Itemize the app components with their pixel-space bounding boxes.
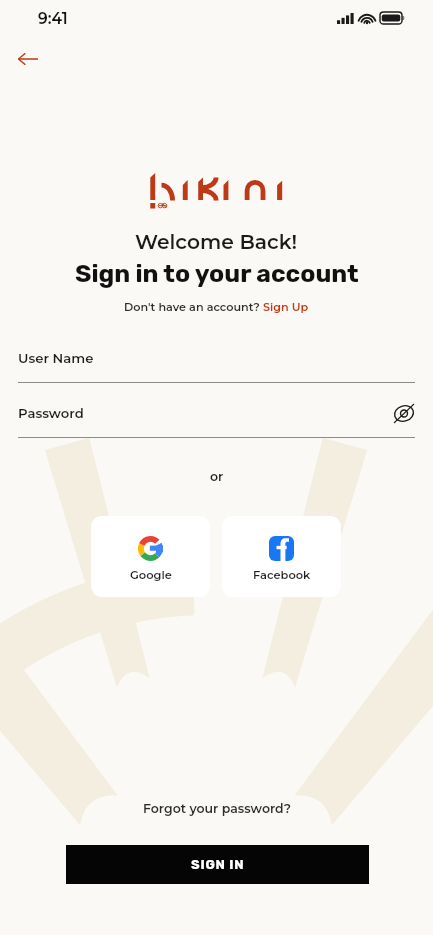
button[interactable]: Back bbox=[12, 43, 44, 75]
button[interactable]: Google bbox=[91, 516, 210, 597]
staticText: or bbox=[210, 469, 224, 484]
staticText: SIGN IN bbox=[191, 857, 245, 872]
staticText: 9:41 bbox=[38, 9, 68, 28]
staticText: Welcome Back! bbox=[135, 229, 298, 254]
button[interactable]: Facebook bbox=[222, 516, 341, 597]
button[interactable]: Forgot your password? bbox=[143, 801, 291, 816]
staticText: Password bbox=[18, 405, 84, 421]
staticText: Forgot your password? bbox=[143, 801, 291, 816]
staticText: Don't have an account? bbox=[124, 300, 263, 314]
button[interactable]: Show password bbox=[390, 399, 418, 427]
button[interactable]: SIGN IN bbox=[66, 845, 369, 884]
staticText: Google bbox=[130, 568, 172, 582]
staticText: Sign Up bbox=[263, 300, 309, 314]
staticText: Facebook bbox=[253, 568, 311, 582]
staticText: Sign in to your account bbox=[75, 259, 359, 288]
staticText: User Name bbox=[18, 350, 94, 366]
button[interactable]: Sign Up bbox=[263, 300, 309, 314]
